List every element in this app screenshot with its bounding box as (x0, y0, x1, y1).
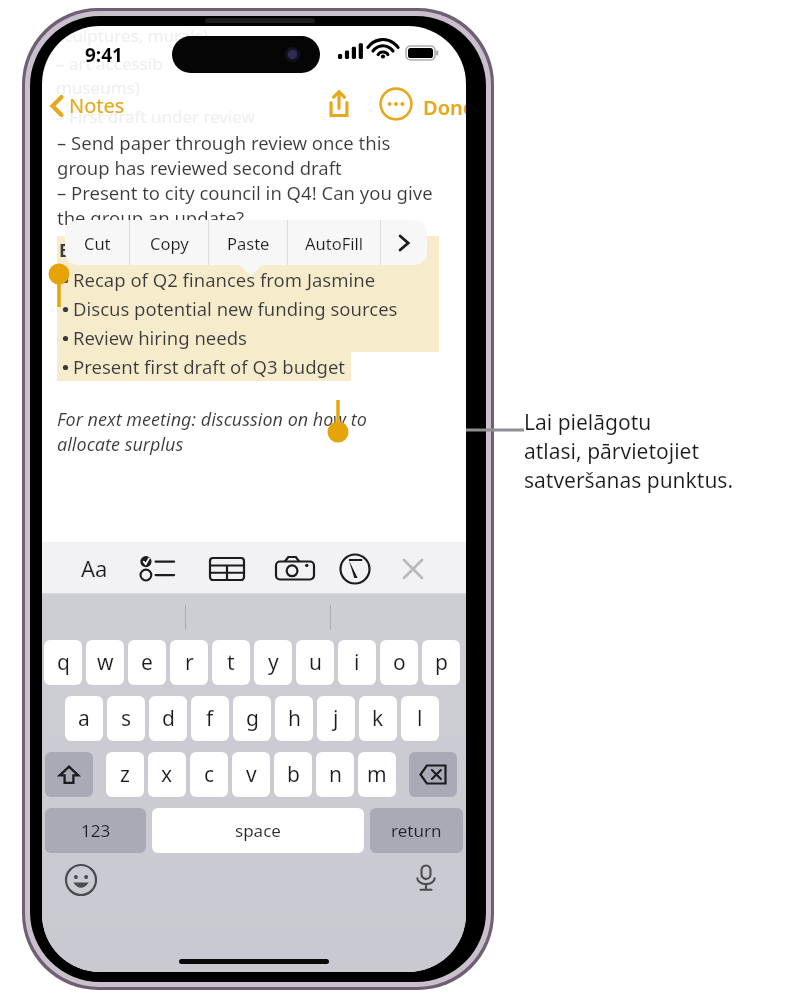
button[interactable]: More options (381, 220, 427, 265)
button[interactable]: d (149, 696, 187, 741)
staticText: s (121, 704, 132, 733)
staticText: 123 (81, 819, 111, 842)
staticText: the group an update? (57, 205, 245, 230)
staticText: – Present to city council in Q4! Can you… (57, 180, 433, 205)
staticText: g (246, 704, 259, 733)
staticText: – art accessib (free (56, 52, 244, 75)
button[interactable]: Paste (209, 220, 287, 265)
staticText: y (268, 648, 279, 677)
staticText: allocate surplus (57, 432, 184, 457)
staticText: Review hiring needs (73, 325, 247, 350)
staticText: Present first draft of Q3 budget (73, 354, 346, 379)
button[interactable]: v (232, 752, 270, 797)
button[interactable]: z (106, 752, 144, 797)
button[interactable]: a (65, 696, 103, 741)
staticText: Lai pielāgotu (524, 408, 652, 437)
staticText: AutoFill (305, 232, 364, 254)
staticText: Aa (81, 553, 108, 583)
staticText: j (333, 704, 339, 733)
staticText: – First draft under review (56, 105, 255, 124)
staticText: Discus potential new funding sources (73, 296, 398, 321)
button[interactable]: x (148, 752, 186, 797)
staticText: f (206, 704, 214, 733)
staticText: v (246, 760, 257, 789)
staticText: return (391, 819, 442, 842)
staticText: Paste (227, 232, 270, 254)
staticText: n (329, 760, 342, 789)
staticText: o (393, 648, 406, 677)
staticText: For next meeting: discussion on how to (57, 407, 367, 432)
button[interactable]: g (233, 696, 271, 741)
button[interactable]: Key (45, 752, 93, 797)
button[interactable]: AutoFill (288, 220, 380, 265)
button[interactable]: return (370, 808, 463, 853)
staticText: Notes (69, 92, 125, 119)
button[interactable]: q (44, 640, 82, 685)
button[interactable]: i (338, 640, 376, 685)
button[interactable]: k (359, 696, 397, 741)
staticText: c (204, 760, 215, 789)
button[interactable]: Camera (274, 554, 316, 584)
button[interactable]: h (275, 696, 313, 741)
staticText: t (227, 648, 235, 677)
staticText: Cut (84, 232, 111, 254)
staticText: e (141, 648, 153, 677)
staticText: i (354, 648, 360, 677)
staticText: Recap of Q2 finances from Jasmine (73, 267, 376, 292)
button[interactable]: Text format (68, 550, 120, 586)
button[interactable]: p (422, 640, 460, 685)
staticText: atlasi, pārvietojiet (524, 437, 699, 466)
staticText: z (120, 760, 130, 789)
button[interactable]: Dictation (410, 861, 442, 893)
staticText: q (57, 648, 70, 677)
button[interactable]: e (128, 640, 166, 685)
button[interactable]: Markup (339, 553, 371, 585)
staticText: w (97, 648, 114, 677)
staticText: r (185, 648, 194, 677)
button[interactable]: u (296, 640, 334, 685)
button[interactable]: o (380, 640, 418, 685)
button[interactable]: y (254, 640, 292, 685)
staticText: d (162, 704, 175, 733)
staticText: group has reviewed second draft (57, 155, 342, 180)
staticText: k (372, 704, 384, 733)
button[interactable]: s (107, 696, 145, 741)
staticText: a (78, 704, 90, 733)
staticText: Budget check-in (59, 238, 204, 263)
staticText: 9:41 (85, 42, 123, 68)
staticText: p (435, 648, 448, 677)
button[interactable]: b (274, 752, 312, 797)
button[interactable]: More (379, 87, 413, 121)
staticText: museums) (56, 76, 140, 99)
button[interactable]: r (170, 640, 208, 685)
button[interactable]: Checklist (138, 552, 182, 584)
button[interactable]: f (191, 696, 229, 741)
staticText: h (288, 704, 301, 733)
button[interactable]: m (358, 752, 396, 797)
staticText: Copy (150, 232, 189, 254)
button[interactable]: n (316, 752, 354, 797)
staticText: sculptures, murals) (56, 26, 208, 47)
button[interactable]: Cut (65, 220, 129, 265)
staticText: space (235, 819, 281, 842)
button[interactable]: w (86, 640, 124, 685)
button[interactable]: c (190, 752, 228, 797)
staticText: l (417, 704, 423, 733)
staticText: satveršanas punktus. (524, 466, 734, 495)
button[interactable]: Share (321, 86, 357, 122)
staticText: b (287, 760, 300, 789)
staticText: m (367, 760, 387, 789)
button[interactable]: Key (409, 752, 457, 797)
button[interactable]: Done (420, 91, 466, 124)
button[interactable]: 123 (45, 808, 146, 853)
button[interactable]: Table (208, 554, 246, 584)
button[interactable]: t (212, 640, 250, 685)
button[interactable]: Notes (44, 88, 131, 123)
button[interactable]: j (317, 696, 355, 741)
staticText: – Send paper through review once this (57, 130, 391, 155)
button[interactable]: l (401, 696, 439, 741)
button[interactable]: Copy (130, 220, 208, 265)
button[interactable]: space (152, 808, 364, 853)
button[interactable]: Close (398, 554, 428, 584)
button[interactable]: Emoji (64, 863, 98, 897)
